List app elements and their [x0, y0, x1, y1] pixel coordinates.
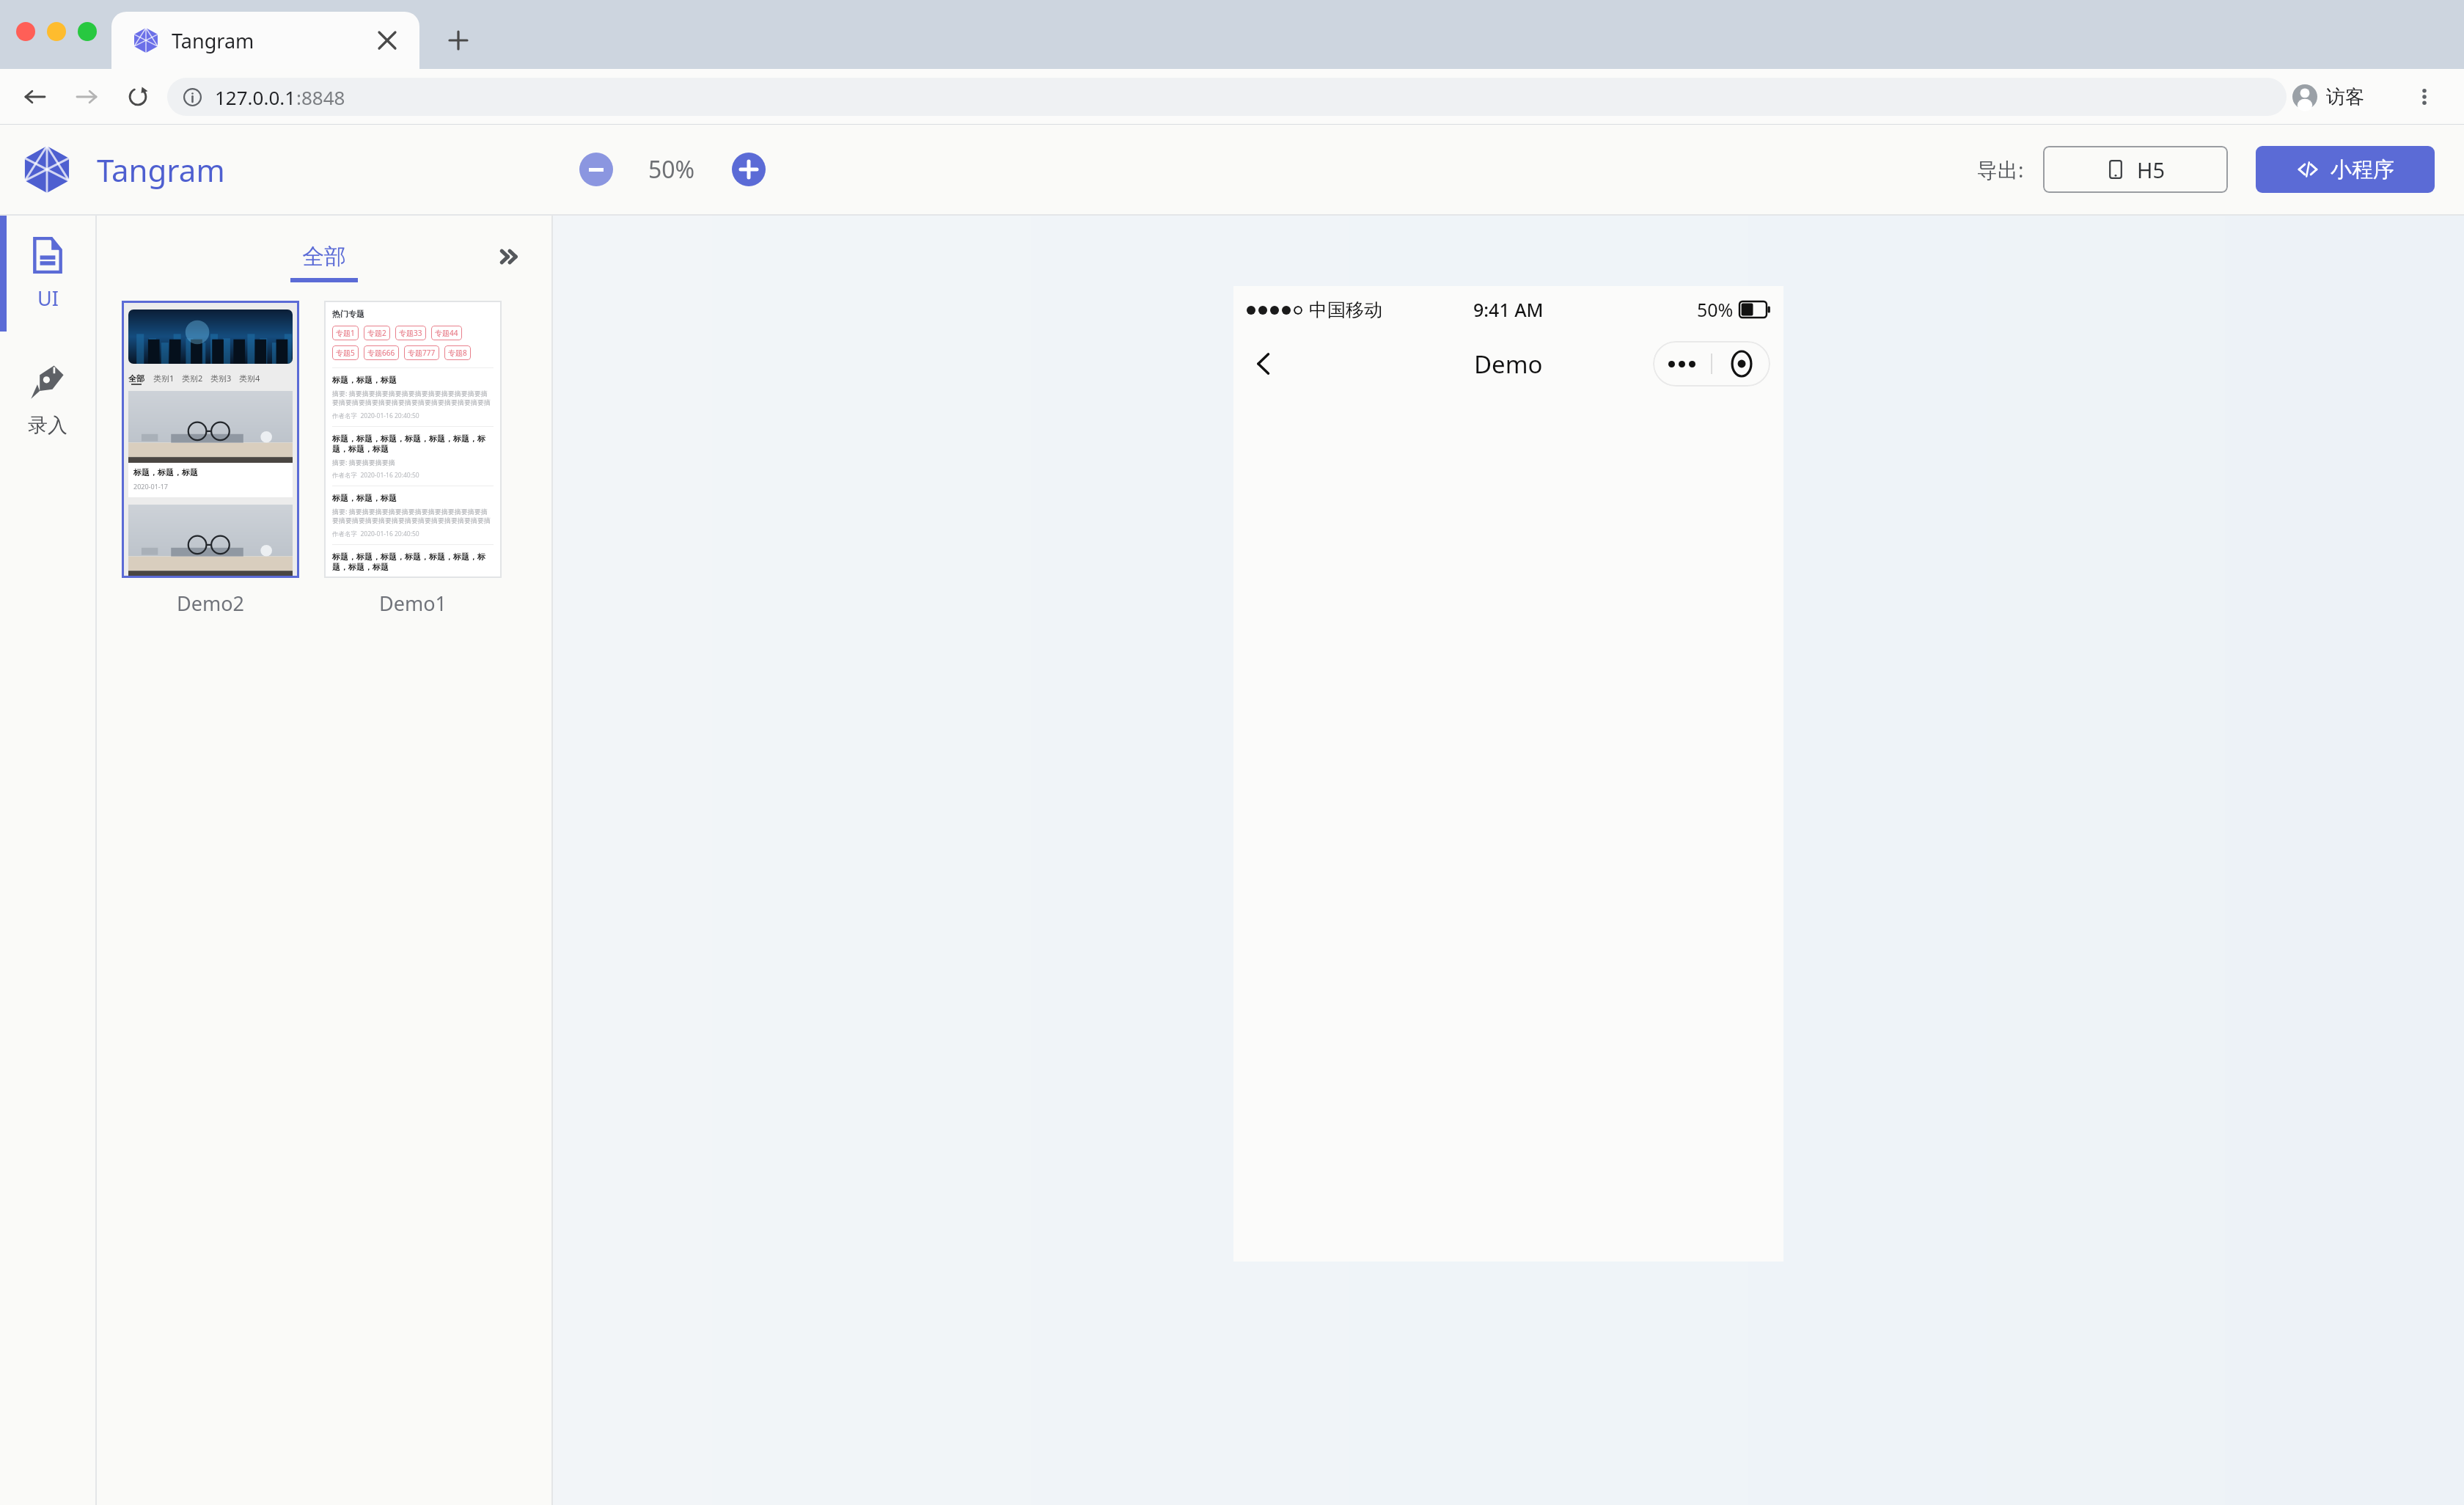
- button[interactable]: Back: [18, 79, 53, 114]
- staticText: 标题，标题，标题，标题，标题，标题，标题，标题，标题: [332, 433, 494, 454]
- button[interactable]: 全部: [290, 243, 358, 282]
- staticText: :8848: [296, 84, 345, 110]
- button[interactable]: Zoom out: [579, 153, 613, 186]
- button[interactable]: 热门专题: [324, 301, 502, 578]
- button[interactable]: 小程序: [2256, 146, 2435, 193]
- button[interactable]: More options: [2405, 78, 2443, 116]
- staticText: H5: [2137, 155, 2166, 184]
- button[interactable]: Close tab: [371, 24, 403, 56]
- button[interactable]: Tangram: [111, 12, 419, 69]
- staticText: 作者名字 2020-01-16 20:40:50: [332, 471, 419, 480]
- button[interactable]: UI: [0, 216, 95, 332]
- staticText: 全部: [302, 243, 346, 271]
- staticText: 专题1: [336, 328, 355, 338]
- staticText: 专题5: [336, 348, 355, 358]
- staticText: 热门专题: [332, 309, 364, 319]
- staticText: 2020-01-17: [133, 482, 168, 491]
- button[interactable]: 访客: [2282, 78, 2377, 116]
- staticText: 类别3: [210, 373, 232, 384]
- button[interactable]: 专题777: [408, 348, 436, 358]
- button[interactable]: 专题5: [336, 348, 355, 358]
- button[interactable]: Maximize window: [78, 22, 97, 41]
- staticText: 专题2: [367, 328, 386, 338]
- staticText: 作者名字 2020-01-16 20:40:50: [332, 411, 419, 420]
- button[interactable]: 127.0.0.1: [167, 78, 2287, 116]
- staticText: Tangram: [172, 27, 254, 54]
- staticText: 50%: [648, 153, 695, 186]
- button[interactable]: Close mini program: [1712, 341, 1770, 387]
- staticText: 全部: [128, 373, 144, 384]
- button[interactable]: New tab: [440, 22, 477, 59]
- staticText: 中国移动: [1309, 299, 1382, 321]
- button[interactable]: Forward: [69, 79, 104, 114]
- button[interactable]: 标题，标题，标题，标题，标题，标题，标题，标题，标题: [332, 545, 494, 578]
- button[interactable]: 专题8: [448, 348, 467, 358]
- button[interactable]: 专题2: [367, 328, 386, 338]
- button[interactable]: Tangram: [23, 146, 225, 193]
- button[interactable]: Collapse panel: [490, 237, 529, 277]
- button[interactable]: 标题，标题，标题: [332, 368, 494, 426]
- button[interactable]: 全部: [122, 301, 299, 578]
- staticText: 50%: [1697, 297, 1734, 322]
- staticText: 标题，标题，标题: [332, 493, 397, 503]
- button[interactable]: Zoom in: [732, 153, 766, 186]
- staticText: 类别2: [182, 373, 203, 384]
- staticText: 9:41 AM: [1473, 297, 1544, 322]
- staticText: UI: [37, 285, 59, 312]
- button[interactable]: Minimize window: [47, 22, 66, 41]
- staticText: Demo2: [177, 590, 244, 617]
- button[interactable]: Back: [1241, 341, 1286, 387]
- staticText: 访客: [2326, 85, 2364, 109]
- staticText: 专题33: [399, 328, 422, 338]
- staticText: Demo1: [379, 590, 447, 617]
- staticText: 专题666: [367, 348, 395, 358]
- staticText: 小程序: [2331, 156, 2394, 183]
- staticText: 专题777: [408, 348, 436, 358]
- button[interactable]: 专题44: [435, 328, 458, 338]
- staticText: 标题，标题，标题: [133, 467, 198, 477]
- staticText: 专题8: [448, 348, 467, 358]
- button[interactable]: 录入: [0, 332, 95, 468]
- staticText: 专题44: [435, 328, 458, 338]
- button[interactable]: 专题1: [336, 328, 355, 338]
- staticText: 作者名字 2020-01-16 20:40:50: [332, 530, 419, 538]
- button[interactable]: 专题666: [367, 348, 395, 358]
- button[interactable]: Close window: [16, 22, 35, 41]
- staticText: 类别1: [153, 373, 175, 384]
- staticText: 摘要: 摘要摘要摘要摘: [332, 458, 395, 466]
- staticText: 摘要: 摘要摘要摘要摘要摘要摘要摘要摘要摘要摘要摘要摘要摘要摘要摘要摘要摘要摘要…: [332, 389, 494, 407]
- button[interactable]: Reload: [120, 79, 155, 114]
- staticText: Tangram: [97, 149, 225, 191]
- staticText: 摘要: 摘要摘要摘要摘要摘要摘要摘要摘要摘要摘要摘要摘要摘要摘要摘要摘要摘要摘要…: [332, 507, 494, 525]
- button[interactable]: 标题，标题，标题: [332, 486, 494, 544]
- button[interactable]: 标题，标题，标题，标题，标题，标题，标题，标题，标题: [332, 427, 494, 486]
- staticText: 导出:: [1977, 155, 2024, 183]
- staticText: 类别4: [239, 373, 260, 384]
- button[interactable]: H5: [2043, 146, 2228, 193]
- staticText: 标题，标题，标题，标题，标题，标题，标题，标题，标题: [332, 552, 494, 572]
- staticText: 录入: [28, 413, 67, 438]
- staticText: Demo: [1474, 348, 1543, 381]
- staticText: 标题，标题，标题: [332, 375, 397, 385]
- staticText: 127.0.0.1: [215, 84, 296, 110]
- button[interactable]: More: [1653, 341, 1711, 387]
- button[interactable]: 专题33: [399, 328, 422, 338]
